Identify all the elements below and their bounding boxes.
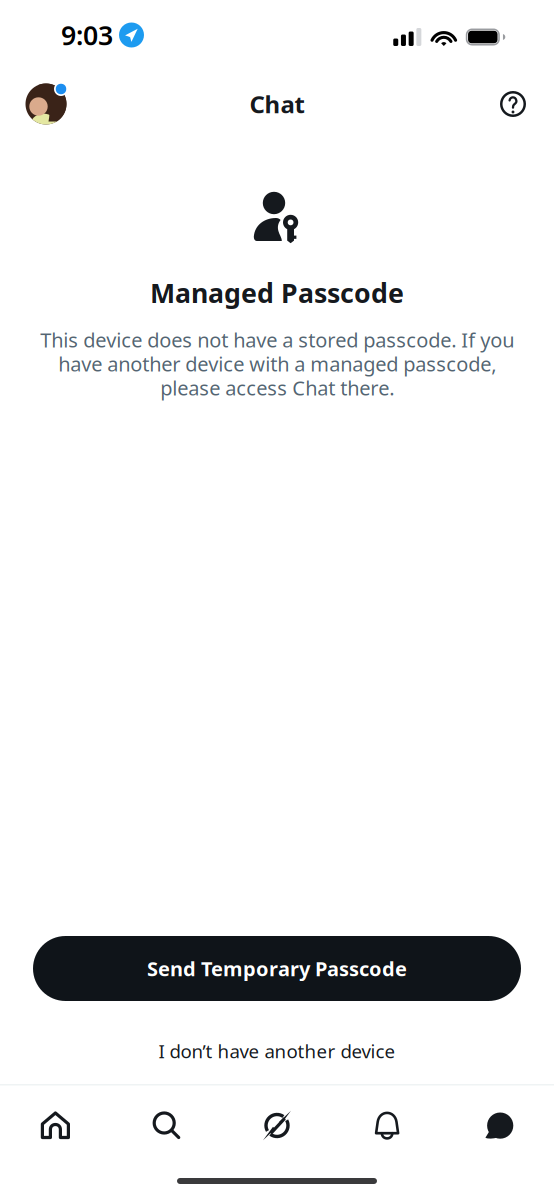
button[interactable]: Search [111,1110,222,1140]
button[interactable]: Notifications [332,1111,443,1139]
button[interactable]: Grok [222,1109,332,1141]
staticText: I don’t have another device [158,1039,395,1063]
button[interactable]: Send Temporary Passcode [33,936,521,1001]
staticText: Managed Passcode [150,275,404,310]
button[interactable]: Messages [443,1112,554,1139]
button[interactable]: Account [24,82,68,126]
button[interactable]: Help [496,87,530,121]
staticText: Chat [249,88,304,120]
staticText: 9:03 [61,17,113,53]
button[interactable]: I don’t have another device [0,1023,554,1079]
staticText: Send Temporary Passcode [147,955,407,982]
button[interactable]: Home [0,1110,111,1140]
staticText: This device does not have a stored passc… [40,326,514,401]
